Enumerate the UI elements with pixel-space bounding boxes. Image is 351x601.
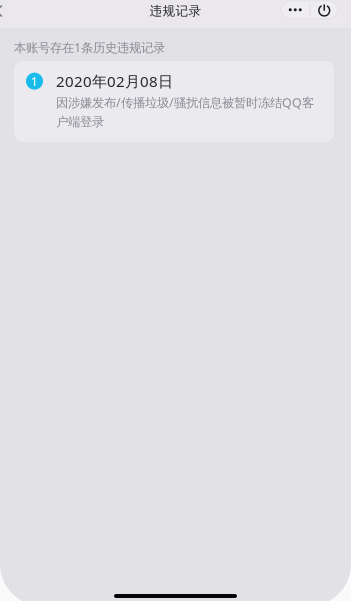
button[interactable]: 1 — [14, 61, 334, 142]
staticText: 因涉嫌发布/传播垃圾/骚扰信息被暂时冻结QQ客户端登录 — [56, 94, 314, 130]
button[interactable]: Close mini program — [310, 1, 338, 19]
staticText: 本账号存在1条历史违规记录 — [14, 39, 165, 56]
staticText: 1 — [30, 72, 38, 90]
button[interactable]: Back — [0, 5, 9, 16]
button[interactable]: More — [281, 1, 309, 19]
staticText: 违规记录 — [149, 3, 201, 19]
staticText: 2020年02月08日 — [56, 71, 173, 91]
